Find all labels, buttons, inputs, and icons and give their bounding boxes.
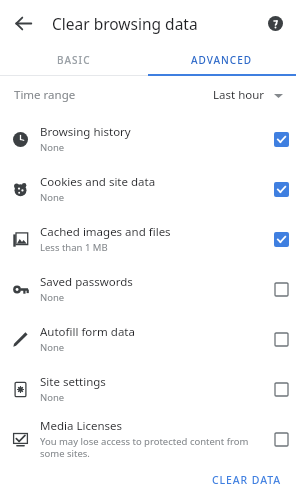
button[interactable]: Back: [6, 6, 40, 40]
staticText: None: [40, 391, 65, 404]
staticText: Saved passwords: [40, 274, 133, 290]
staticText: Last hour: [213, 87, 265, 103]
staticText: ADVANCED: [191, 53, 253, 67]
button[interactable]: Autofill form data: [0, 314, 296, 364]
staticText: Less than 1 MB: [40, 241, 108, 254]
button[interactable]: Media Licenses: [0, 414, 296, 464]
button[interactable]: Help: [259, 7, 291, 39]
button[interactable]: Site settings: [0, 364, 296, 414]
button[interactable]: Checked: [274, 132, 289, 147]
staticText: None: [40, 291, 65, 304]
staticText: None: [40, 341, 65, 354]
button[interactable]: Unchecked: [274, 382, 289, 397]
staticText: Time range: [14, 87, 76, 103]
staticText: Autofill form data: [40, 324, 135, 340]
button[interactable]: Time range: [0, 76, 296, 114]
staticText: CLEAR DATA: [212, 473, 282, 487]
button[interactable]: CLEAR DATA: [198, 466, 296, 494]
button[interactable]: ADVANCED: [148, 46, 296, 74]
button[interactable]: Unchecked: [274, 332, 289, 347]
staticText: Clear browsing data: [52, 13, 198, 34]
button[interactable]: Checked: [274, 182, 289, 197]
button[interactable]: Unchecked: [274, 282, 289, 297]
staticText: You may lose access to protected content…: [40, 435, 260, 460]
staticText: Browsing history: [40, 124, 131, 140]
button[interactable]: Saved passwords: [0, 264, 296, 314]
button[interactable]: BASIC: [0, 46, 148, 74]
staticText: Media Licenses: [40, 418, 123, 434]
button[interactable]: Cookies and site data: [0, 164, 296, 214]
staticText: Cached images and files: [40, 224, 171, 240]
button[interactable]: Cached images and files: [0, 214, 296, 264]
staticText: None: [40, 141, 65, 154]
staticText: None: [40, 191, 65, 204]
button[interactable]: Checked: [274, 232, 289, 247]
button[interactable]: Unchecked: [274, 432, 289, 447]
button[interactable]: Browsing history: [0, 114, 296, 164]
staticText: BASIC: [57, 53, 91, 67]
staticText: Site settings: [40, 374, 106, 390]
staticText: Cookies and site data: [40, 174, 156, 190]
